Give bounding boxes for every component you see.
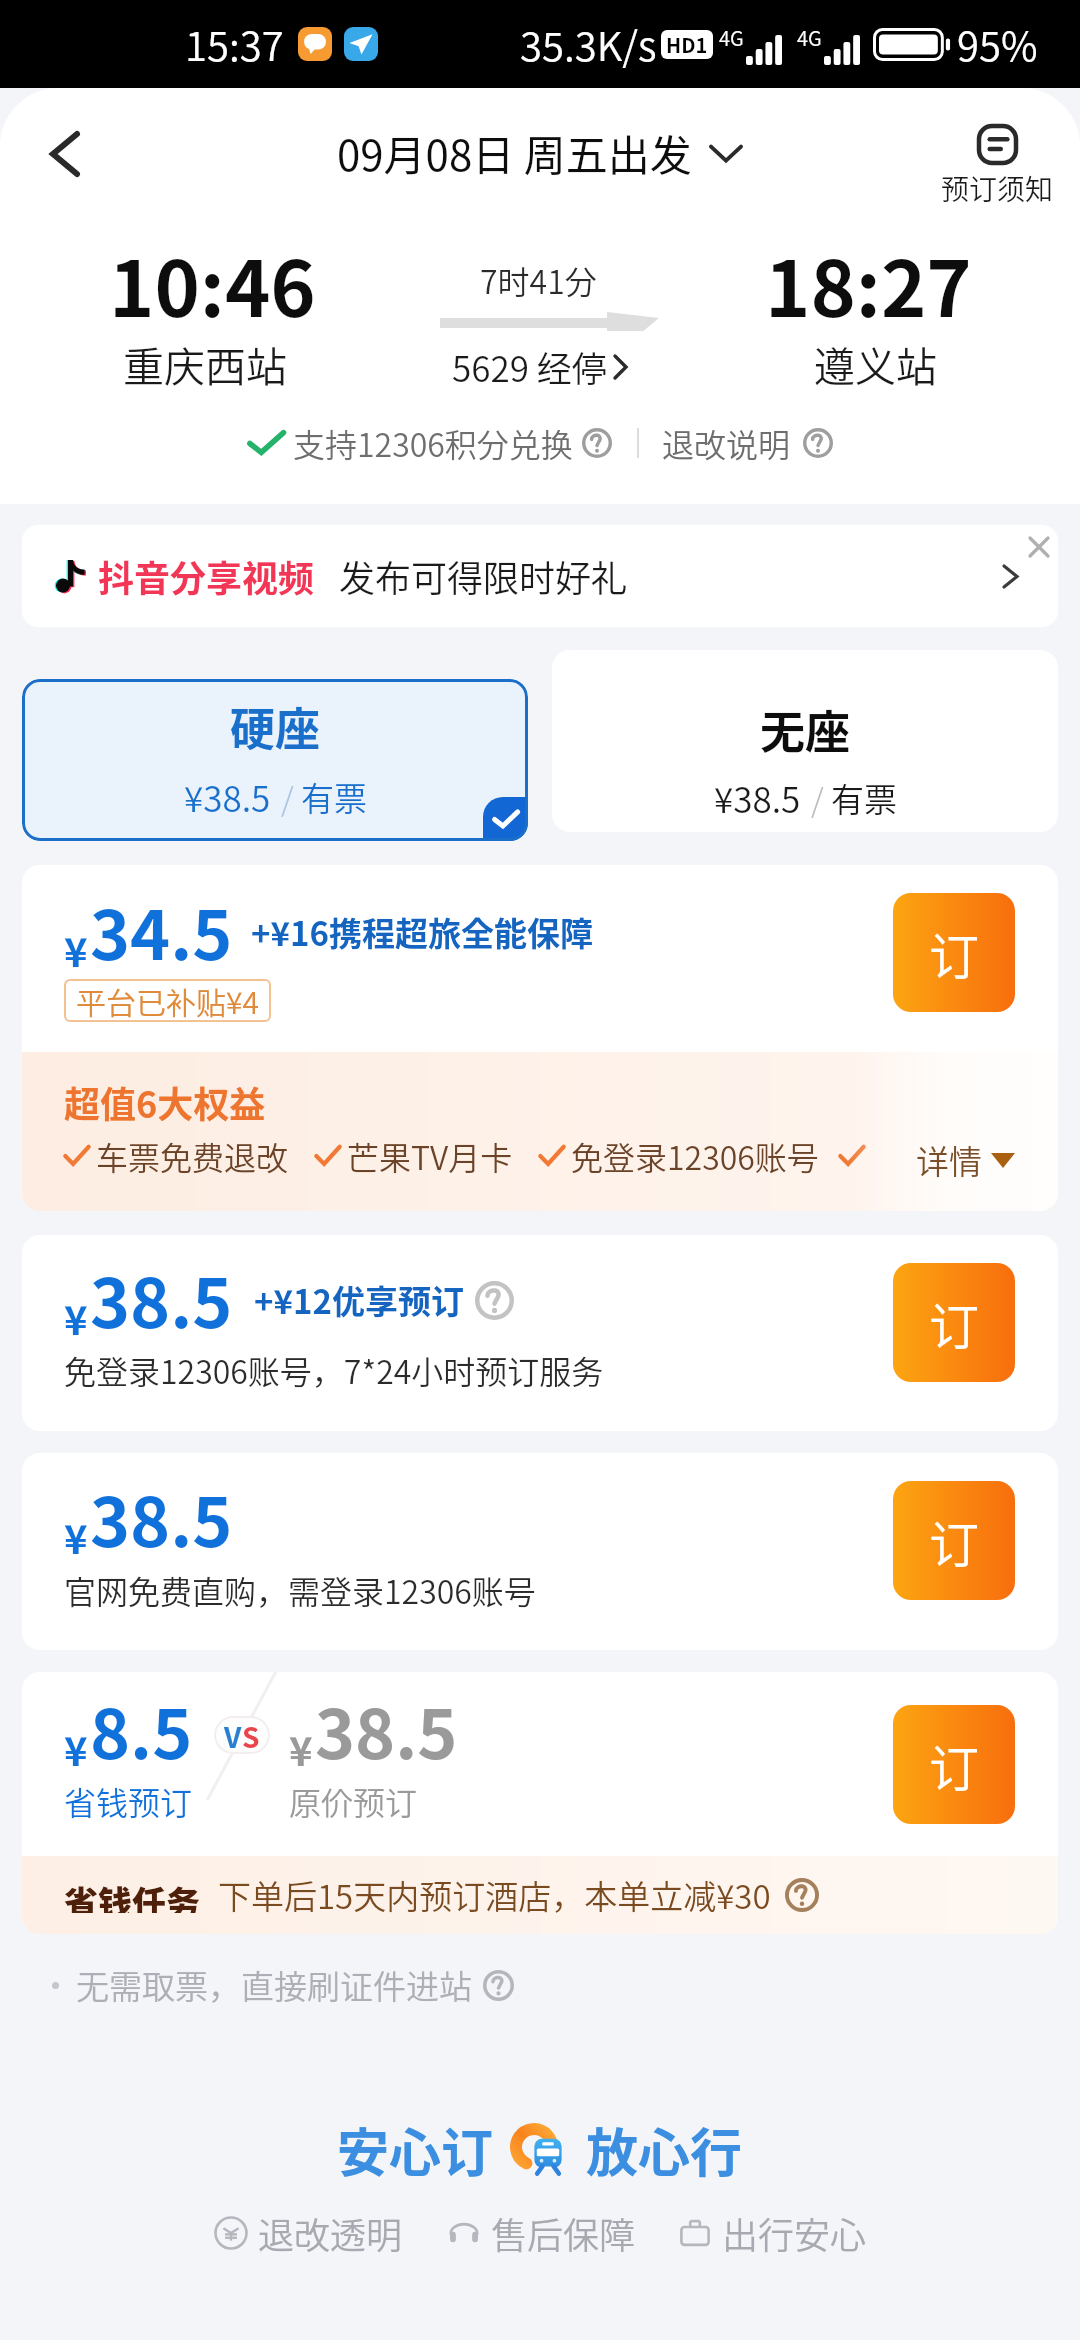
staticText: 95% bbox=[957, 15, 1038, 73]
staticText: 出行安心 bbox=[722, 2207, 867, 2259]
staticText: 15:37 bbox=[185, 15, 284, 73]
staticText: 支持12306积分兑换 bbox=[293, 420, 573, 466]
staticText: +¥12优享预订 bbox=[254, 1276, 464, 1324]
button[interactable]: 详情 bbox=[916, 1136, 1015, 1184]
staticText: 发布可得限时好礼 bbox=[339, 550, 628, 602]
staticText: 09月08日 周五出发 bbox=[337, 122, 692, 183]
staticText: 18:27 bbox=[765, 228, 972, 339]
staticText: 免登录12306账号 bbox=[571, 1133, 819, 1179]
staticText: 38.5 bbox=[315, 1680, 458, 1778]
button[interactable]: 退改透明 bbox=[214, 2207, 403, 2259]
staticText: 抖音分享视频 bbox=[98, 550, 315, 602]
staticText: 4G bbox=[797, 23, 822, 52]
button[interactable]: 售后保障 bbox=[447, 2207, 636, 2259]
staticText: 详情 bbox=[916, 1136, 982, 1184]
staticText: 安心订 bbox=[337, 2112, 494, 2187]
button[interactable]: 抖音分享视频 bbox=[22, 525, 1058, 627]
staticText: 下单后15天内预订酒店，本单立减¥30 bbox=[218, 1871, 771, 1919]
staticText: 4G bbox=[719, 23, 744, 52]
staticText: 遵义站 bbox=[814, 334, 937, 393]
staticText: 35.3K/s bbox=[520, 15, 657, 73]
staticText: ¥38.5 bbox=[714, 772, 801, 823]
button[interactable]: 订 bbox=[893, 893, 1015, 1012]
staticText: 有票 bbox=[301, 773, 367, 821]
staticText: 官网免费直购，需登录12306账号 bbox=[64, 1567, 536, 1613]
button[interactable]: 09月08日 周五出发 bbox=[337, 122, 743, 183]
staticText: 退改透明 bbox=[258, 2207, 403, 2259]
staticText: 订 bbox=[929, 1287, 979, 1359]
staticText: ¥ bbox=[289, 1720, 313, 1778]
button[interactable]: 无座 bbox=[552, 650, 1058, 832]
button[interactable]: Back bbox=[33, 122, 97, 186]
button[interactable]: 订 bbox=[893, 1705, 1015, 1824]
staticText: 38.5 bbox=[90, 1468, 233, 1566]
staticText: V bbox=[224, 1716, 242, 1754]
staticText: 放心行 bbox=[586, 2112, 743, 2187]
staticText: 订 bbox=[929, 1729, 979, 1801]
button[interactable]: 出行安心 bbox=[678, 2207, 867, 2259]
staticText: 有票 bbox=[831, 774, 897, 822]
staticText: 7时41分 bbox=[480, 257, 597, 303]
staticText: ¥ bbox=[64, 921, 88, 979]
staticText: 超值6大权益 bbox=[64, 1076, 266, 1128]
staticText: / bbox=[811, 775, 824, 821]
staticText: 省钱预订 bbox=[64, 1778, 193, 1824]
staticText: S bbox=[242, 1716, 260, 1754]
staticText: ¥ bbox=[64, 1508, 88, 1566]
button[interactable]: Close bbox=[1017, 525, 1061, 569]
button[interactable]: 订 bbox=[893, 1481, 1015, 1600]
staticText: ¥ bbox=[64, 1289, 88, 1347]
staticText: ¥ bbox=[64, 1720, 88, 1778]
staticText: 预订须知 bbox=[941, 168, 1054, 209]
staticText: 原价预订 bbox=[289, 1778, 418, 1824]
staticText: 无座 bbox=[760, 697, 851, 762]
staticText: 34.5 bbox=[90, 881, 233, 979]
staticText: 38.5 bbox=[90, 1249, 233, 1347]
staticText: 芒果TV月卡 bbox=[347, 1133, 513, 1179]
staticText: / bbox=[281, 774, 294, 820]
staticText: 10:46 bbox=[109, 228, 316, 339]
staticText: 8.5 bbox=[90, 1680, 193, 1778]
staticText: 省钱任务 bbox=[64, 1877, 200, 1913]
button[interactable]: 订 bbox=[893, 1263, 1015, 1382]
staticText: 订 bbox=[929, 917, 979, 989]
staticText: 5629 经停 bbox=[452, 341, 607, 392]
staticText: ¥38.5 bbox=[184, 771, 271, 822]
staticText: 硬座 bbox=[230, 694, 321, 759]
button[interactable]: 5629 经停 bbox=[452, 341, 628, 392]
button[interactable]: 预订须知 bbox=[941, 124, 1054, 209]
staticText: 重庆西站 bbox=[123, 334, 287, 393]
staticText: 免登录12306账号，7*24小时预订服务 bbox=[64, 1347, 604, 1393]
staticText: 车票免费退改 bbox=[96, 1133, 289, 1179]
staticText: 订 bbox=[929, 1505, 979, 1577]
staticText: 无需取票，直接刷证件进站 bbox=[76, 1961, 472, 2009]
staticText: 售后保障 bbox=[491, 2207, 636, 2259]
staticText: 退改说明 bbox=[662, 420, 791, 466]
staticText: +¥16携程超旅全能保障 bbox=[251, 908, 593, 956]
staticText: HD1 bbox=[666, 30, 708, 59]
staticText: 平台已补贴¥4 bbox=[76, 979, 259, 1022]
button[interactable]: 硬座 bbox=[22, 679, 528, 841]
